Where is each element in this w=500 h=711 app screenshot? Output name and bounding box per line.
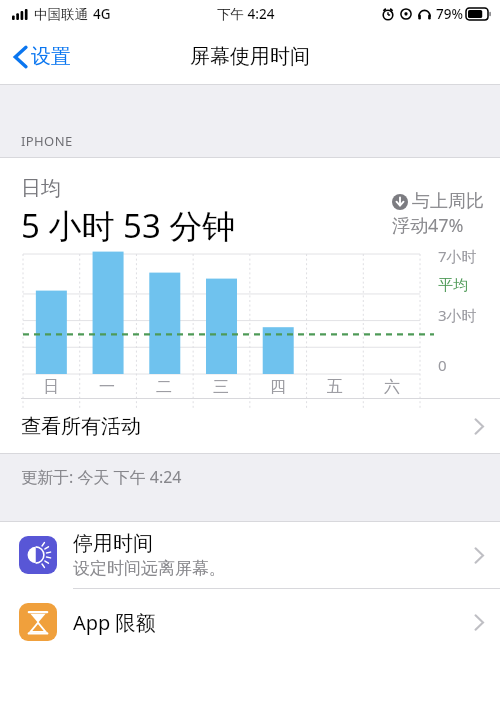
staticText: 下午 4:24: [217, 5, 275, 23]
staticText: 更新于: 今天 下午 4:24: [21, 466, 182, 488]
staticText: 日均: [21, 176, 61, 201]
button[interactable]: 查看所有活动: [0, 399, 500, 453]
staticText: 三: [213, 377, 229, 397]
staticText: 查看所有活动: [21, 414, 474, 439]
staticText: 停用时间: [73, 531, 153, 556]
staticText: 设定时间远离屏幕。: [73, 558, 226, 579]
staticText: 浮动47%: [392, 213, 464, 238]
staticText: 二: [156, 377, 172, 397]
staticText: 五: [327, 377, 343, 397]
staticText: 平均: [438, 276, 468, 295]
staticText: 一: [99, 377, 115, 397]
button[interactable]: 设置: [10, 38, 75, 75]
staticText: 屏幕使用时间: [190, 44, 310, 69]
button[interactable]: 停用时间: [0, 522, 500, 588]
staticText: 日: [43, 377, 59, 397]
staticText: 7小时: [438, 246, 477, 266]
staticText: 4G: [93, 5, 111, 23]
staticText: App 限额: [73, 609, 474, 636]
staticText: 0: [438, 355, 447, 375]
staticText: 六: [384, 377, 400, 397]
staticText: 中国联通: [34, 6, 88, 23]
staticText: 5 小时 53 分钟: [21, 203, 236, 248]
staticText: 与上周比: [412, 190, 484, 213]
staticText: 79%: [436, 5, 463, 23]
staticText: 四: [270, 377, 286, 397]
staticText: 设置: [31, 44, 71, 69]
staticText: IPHONE: [21, 132, 73, 150]
staticText: 3小时: [438, 305, 477, 325]
button[interactable]: App 限额: [0, 589, 500, 655]
